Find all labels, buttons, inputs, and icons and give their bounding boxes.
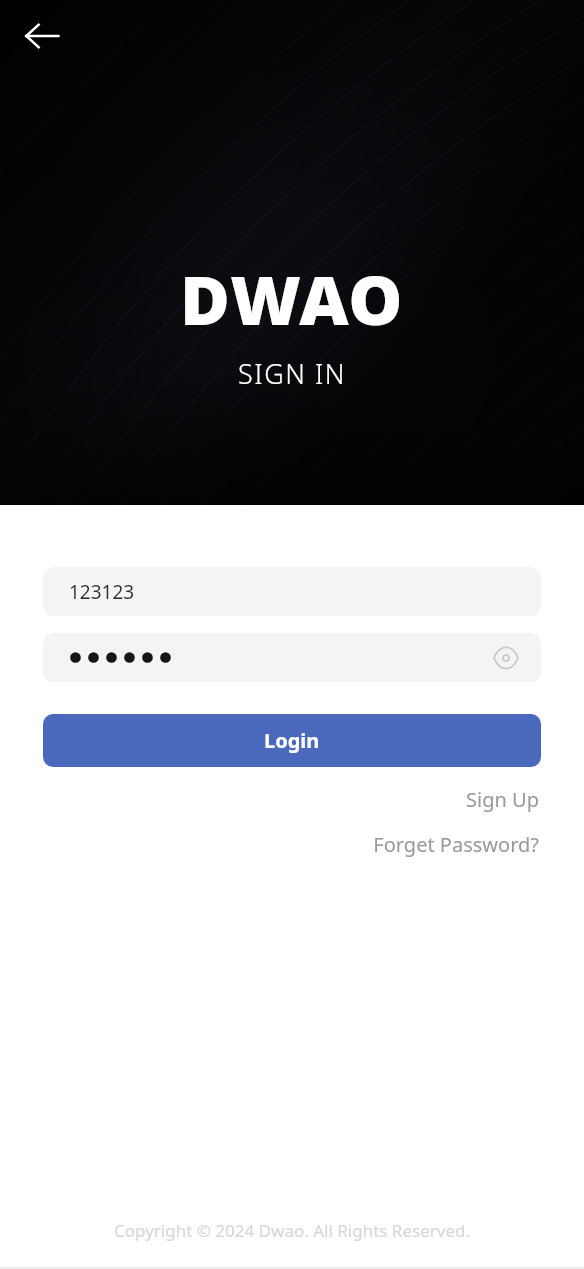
staticText: Copyright © 2024 Dwao. All Rights Reserv… <box>114 1219 471 1242</box>
button[interactable]: Login <box>43 714 541 767</box>
staticText: Login <box>264 727 320 754</box>
staticText: SIGN IN <box>238 355 346 392</box>
staticText: 123123 <box>69 579 135 605</box>
button[interactable]: Back <box>14 8 70 64</box>
button[interactable]: 123123 <box>43 567 541 616</box>
button[interactable]: Forget Password? <box>371 828 541 861</box>
button[interactable]: Show password <box>484 636 528 680</box>
button[interactable]: Show password <box>43 633 541 682</box>
staticText: DWAO <box>180 252 404 345</box>
button[interactable]: Sign Up <box>464 783 541 816</box>
staticText: Sign Up <box>466 786 539 813</box>
staticText: Forget Password? <box>373 831 539 858</box>
